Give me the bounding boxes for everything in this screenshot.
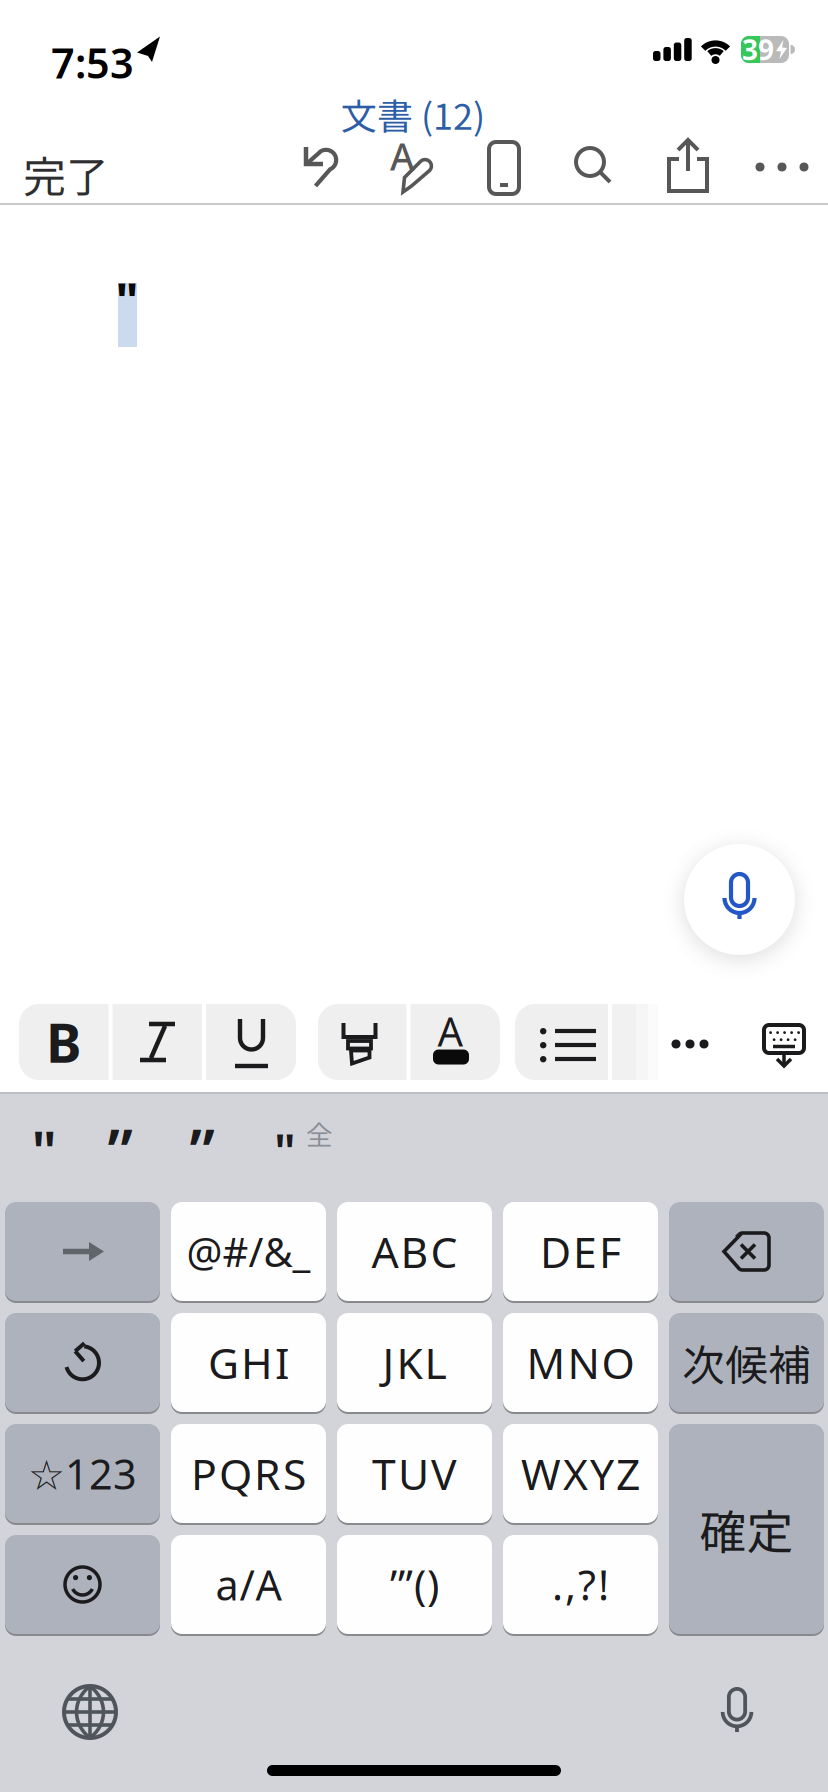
button[interactable]: B xyxy=(19,1004,108,1080)
button[interactable]: ☆123 xyxy=(5,1424,160,1523)
button[interactable] xyxy=(756,1008,812,1080)
button[interactable] xyxy=(207,1004,296,1080)
staticText: ” xyxy=(189,1109,214,1191)
button[interactable]: " xyxy=(14,1115,74,1185)
button[interactable] xyxy=(612,1004,658,1080)
staticText: a/A xyxy=(215,1557,281,1612)
staticText: 完了 xyxy=(23,143,109,205)
button[interactable]: MNO xyxy=(503,1313,658,1412)
button[interactable] xyxy=(113,1004,202,1080)
staticText: 次候補 xyxy=(682,1332,811,1393)
staticText: JKL xyxy=(382,1334,446,1391)
staticText: A xyxy=(437,1004,463,1057)
staticText: DEF xyxy=(540,1223,621,1280)
button[interactable] xyxy=(476,139,532,195)
button[interactable]: ABC xyxy=(337,1202,492,1301)
staticText: TUV xyxy=(372,1445,457,1502)
button[interactable] xyxy=(5,1535,160,1634)
staticText: 39 xyxy=(742,31,774,68)
button[interactable]: 文書 (12) xyxy=(341,88,485,140)
staticText: ’”() xyxy=(390,1557,439,1612)
button[interactable]: .,?! xyxy=(503,1535,658,1634)
button[interactable] xyxy=(5,1202,160,1301)
staticText: GHI xyxy=(208,1334,289,1391)
staticText: PQRS xyxy=(191,1445,306,1502)
button[interactable]: JKL xyxy=(337,1313,492,1412)
button[interactable] xyxy=(58,1680,122,1744)
button[interactable] xyxy=(318,1004,406,1080)
button[interactable]: GHI xyxy=(171,1313,326,1412)
button[interactable]: ’”() xyxy=(337,1535,492,1634)
staticText: ☆123 xyxy=(28,1446,137,1501)
button[interactable] xyxy=(566,139,622,195)
button[interactable]: 確定 xyxy=(669,1424,824,1634)
staticText: 7:53 xyxy=(51,35,134,90)
button[interactable] xyxy=(660,139,716,195)
button[interactable] xyxy=(662,1016,718,1072)
staticText: " xyxy=(274,1119,296,1183)
button[interactable] xyxy=(669,1202,824,1301)
button[interactable]: 次候補 xyxy=(669,1313,824,1412)
button[interactable]: ” xyxy=(90,1115,150,1185)
button[interactable]: " xyxy=(266,1111,366,1181)
button[interactable]: A xyxy=(411,1004,500,1080)
button[interactable]: ” xyxy=(172,1115,232,1185)
button[interactable] xyxy=(684,844,795,955)
staticText: MNO xyxy=(526,1334,634,1391)
button[interactable] xyxy=(515,1004,608,1080)
button[interactable]: 完了 xyxy=(23,143,109,205)
button[interactable]: WXYZ xyxy=(503,1424,658,1523)
button[interactable] xyxy=(290,139,346,195)
staticText: @#/&_ xyxy=(186,1225,310,1278)
staticText: .,?! xyxy=(552,1557,609,1612)
staticText: " xyxy=(115,268,138,332)
button[interactable] xyxy=(754,139,810,195)
button[interactable]: a/A xyxy=(171,1535,326,1634)
button[interactable]: @#/&_ xyxy=(171,1202,326,1301)
staticText: WXYZ xyxy=(521,1445,640,1502)
staticText: 確定 xyxy=(699,1495,793,1563)
staticText: ” xyxy=(107,1109,132,1191)
staticText: " xyxy=(31,1113,56,1187)
button[interactable]: A xyxy=(383,139,439,195)
staticText: 文書 (12) xyxy=(341,88,485,140)
button[interactable]: PQRS xyxy=(171,1424,326,1523)
button[interactable] xyxy=(5,1313,160,1412)
button[interactable]: TUV xyxy=(337,1424,492,1523)
staticText: B xyxy=(46,1007,81,1077)
staticText: ABC xyxy=(371,1223,457,1280)
staticText: 全 xyxy=(306,1114,333,1153)
staticText: A xyxy=(390,131,414,181)
button[interactable]: DEF xyxy=(503,1202,658,1301)
button[interactable] xyxy=(705,1681,769,1745)
